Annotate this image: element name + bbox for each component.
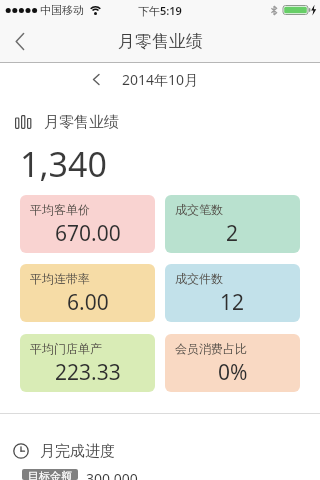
staticText: 223.33	[55, 358, 121, 387]
staticText: 平均连带率	[30, 271, 90, 286]
staticText: 2	[226, 219, 239, 248]
staticText: 2014年10月	[122, 70, 199, 89]
staticText: 月零售业绩	[118, 31, 203, 52]
staticText: 月完成进度	[40, 442, 115, 461]
staticText: 月零售业绩	[44, 113, 119, 132]
staticText: 会员消费占比	[175, 341, 247, 356]
staticText: 平均客单价	[30, 202, 90, 217]
staticText: 下午5:19	[138, 3, 182, 18]
staticText: 12	[220, 288, 245, 317]
staticText: 平均门店单产	[30, 341, 102, 356]
staticText: 300,000	[86, 469, 138, 480]
button[interactable]: 会员消费占比	[165, 334, 300, 392]
staticText: 0%	[218, 358, 248, 387]
staticText: 目标金额	[28, 469, 72, 480]
staticText: 1,340	[20, 141, 107, 187]
button[interactable]: 成交件数	[165, 264, 300, 322]
staticText: 成交件数	[175, 271, 223, 286]
staticText: 成交笔数	[175, 202, 223, 217]
button[interactable]	[0, 20, 40, 62]
button[interactable]: 平均客单价	[20, 195, 155, 253]
staticText: 670.00	[55, 219, 121, 248]
button[interactable]: 成交笔数	[165, 195, 300, 253]
staticText: 6.00	[67, 288, 109, 317]
button[interactable]: 平均门店单产	[20, 334, 155, 392]
button[interactable]: 2014年10月	[0, 63, 320, 95]
button[interactable]: 平均连带率	[20, 264, 155, 322]
staticText: 中国移动	[40, 3, 84, 17]
